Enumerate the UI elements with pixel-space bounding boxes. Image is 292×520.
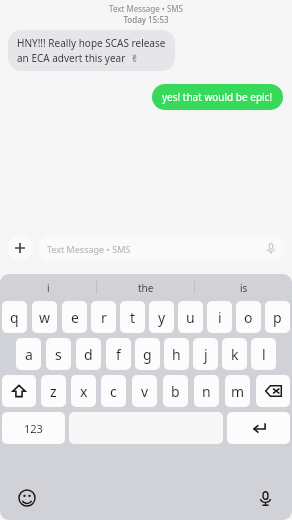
button[interactable]: q xyxy=(2,301,27,333)
button[interactable]: x xyxy=(71,375,96,407)
staticText: b xyxy=(171,382,180,401)
button[interactable]: Shift xyxy=(2,375,36,407)
button[interactable]: a xyxy=(16,338,41,370)
staticText: q xyxy=(10,308,19,327)
button[interactable]: k xyxy=(222,338,247,370)
button[interactable]: c xyxy=(101,375,126,407)
button[interactable]: t xyxy=(120,301,145,333)
button[interactable]: r xyxy=(91,301,116,333)
button[interactable]: yes! that would be epic! xyxy=(152,84,283,110)
staticText: yes! that would be epic! xyxy=(162,90,273,104)
button[interactable]: Emoji xyxy=(16,487,38,509)
staticText: n xyxy=(202,382,211,401)
staticText: p xyxy=(273,308,282,327)
button[interactable]: n xyxy=(194,375,219,407)
button[interactable]: is xyxy=(195,274,292,301)
button[interactable]: f xyxy=(106,338,131,370)
button[interactable]: w xyxy=(32,301,57,333)
staticText: 123 xyxy=(24,421,43,436)
button[interactable]: j xyxy=(193,338,218,370)
button[interactable]: m xyxy=(225,375,250,407)
staticText: c xyxy=(110,382,117,401)
button[interactable]: HNY!!! Really hope SCAS release an ECA a… xyxy=(8,30,175,71)
button[interactable]: s xyxy=(46,338,71,370)
button[interactable]: v xyxy=(132,375,157,407)
staticText: r xyxy=(101,308,107,327)
staticText: the xyxy=(138,281,154,295)
staticText: is xyxy=(240,281,248,295)
button[interactable]: l xyxy=(251,338,276,370)
button[interactable]: h xyxy=(164,338,189,370)
button[interactable]: i xyxy=(207,301,232,333)
button[interactable]: Add attachment xyxy=(7,235,33,261)
staticText: h xyxy=(172,345,181,364)
staticText: Text Message • SMS xyxy=(0,3,292,14)
staticText: z xyxy=(50,382,57,401)
button[interactable]: e xyxy=(62,301,87,333)
staticText: d xyxy=(84,345,93,364)
button[interactable]: o xyxy=(236,301,261,333)
button[interactable]: Return xyxy=(227,412,290,444)
staticText: j xyxy=(204,345,208,364)
button[interactable]: d xyxy=(76,338,101,370)
button[interactable]: y xyxy=(149,301,174,333)
button[interactable]: 123 xyxy=(2,412,65,444)
staticText: u xyxy=(186,308,195,327)
staticText: e xyxy=(71,308,79,327)
staticText: Text Message • SMS xyxy=(47,243,267,255)
staticText: w xyxy=(39,308,51,327)
staticText: l xyxy=(262,345,266,364)
button[interactable]: u xyxy=(178,301,203,333)
staticText: HNY!!! Really hope SCAS release an ECA a… xyxy=(17,36,166,65)
staticText: a xyxy=(25,345,33,364)
button[interactable]: p xyxy=(265,301,290,333)
staticText: m xyxy=(231,382,245,401)
staticText: v xyxy=(141,382,149,401)
staticText: x xyxy=(80,382,88,401)
staticText: Today 15:53 xyxy=(0,14,292,25)
staticText: s xyxy=(55,345,62,364)
button[interactable]: Text Message • SMS xyxy=(38,236,284,261)
staticText: t xyxy=(130,308,136,327)
staticText: k xyxy=(231,345,239,364)
button[interactable]: b xyxy=(163,375,188,407)
staticText: i xyxy=(47,281,50,295)
button[interactable]: Backspace xyxy=(256,375,290,407)
staticText: o xyxy=(244,308,253,327)
staticText: y xyxy=(158,308,166,327)
staticText: g xyxy=(143,345,152,364)
staticText: i xyxy=(218,308,222,327)
button[interactable]: Dictation xyxy=(254,487,276,509)
staticText: f xyxy=(116,345,121,364)
button[interactable]: z xyxy=(41,375,66,407)
button[interactable]: the xyxy=(97,274,194,301)
button[interactable]: i xyxy=(0,274,96,301)
button[interactable]: g xyxy=(135,338,160,370)
